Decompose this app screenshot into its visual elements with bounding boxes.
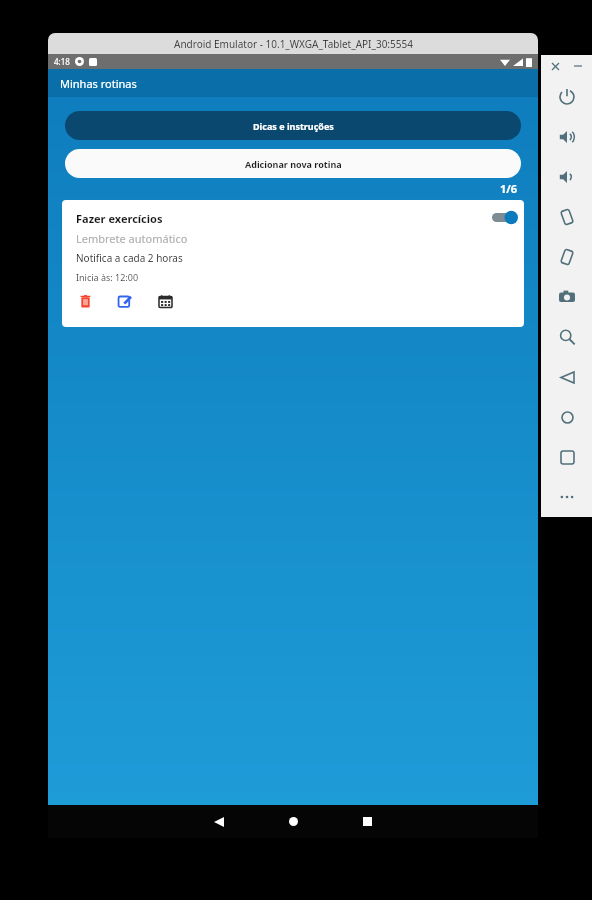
button[interactable]: Edit [116,292,134,310]
staticText: 4:18 [54,56,70,67]
button[interactable]: Dicas e instruções [65,111,521,140]
staticText: Android Emulator - 10.1_WXGA_Tablet_API_… [174,37,413,51]
staticText: Minhas rotinas [60,76,137,91]
button[interactable]: Close [547,58,563,74]
staticText: Fazer exercícios [76,211,163,226]
button[interactable]: Rotate left [547,197,587,237]
button[interactable]: Home [271,805,315,838]
staticText: Inicia às: 12:00 [76,271,139,283]
staticText: Adicionar nova rotina [245,158,342,170]
button[interactable]: Recents [547,437,587,477]
button[interactable]: Power [547,77,587,117]
staticText: Dicas e instruções [253,120,334,132]
button[interactable]: Calendar [156,292,174,310]
staticText: Notifica a cada 2 horas [76,251,183,265]
button[interactable]: Rotate right [547,237,587,277]
button[interactable]: Zoom [547,317,587,357]
button[interactable]: Back [547,357,587,397]
button[interactable]: Minimize [570,58,586,74]
button[interactable]: Home [547,397,587,437]
button[interactable]: Recents [345,805,389,838]
button[interactable]: Adicionar nova rotina [65,149,521,178]
button[interactable]: Toggle reminder [490,209,520,226]
button[interactable]: Volume up [547,117,587,157]
staticText: 1/6 [500,181,518,196]
button[interactable]: Delete [76,292,94,310]
button[interactable]: Volume down [547,157,587,197]
button[interactable]: More [547,477,587,517]
button[interactable]: Fazer exercícios [62,200,524,327]
button[interactable]: Back [197,805,241,838]
staticText: Lembrete automático [76,231,188,246]
button[interactable]: Screenshot [547,277,587,317]
